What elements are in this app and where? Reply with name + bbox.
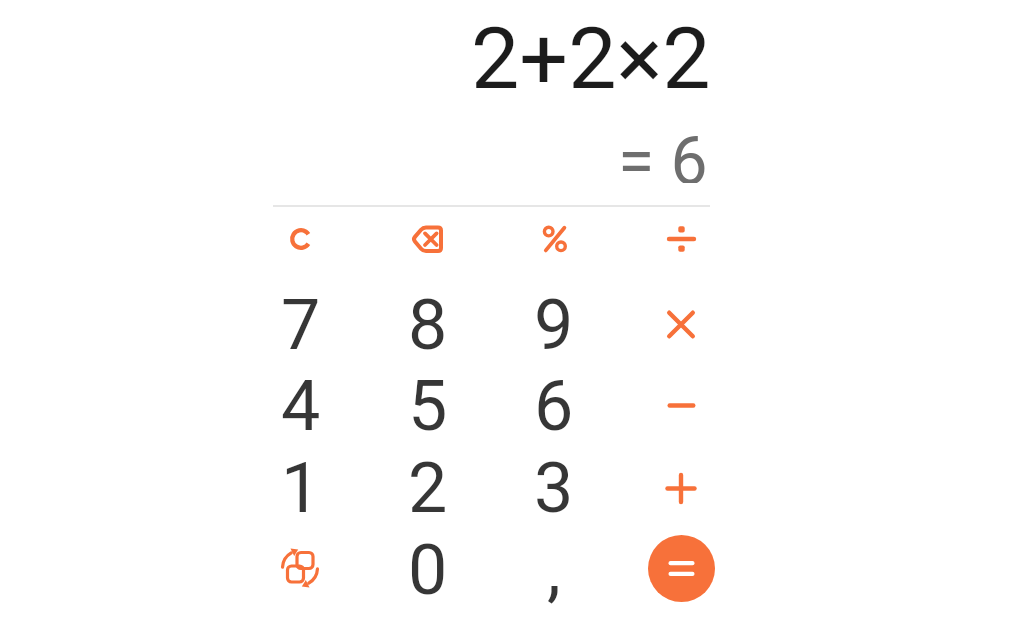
button[interactable]: [366, 198, 490, 280]
staticText: 4: [281, 365, 321, 447]
staticText: 2: [408, 447, 448, 529]
staticText: 3: [534, 447, 574, 529]
button[interactable]: 1: [239, 447, 363, 529]
button[interactable]: 3: [492, 447, 616, 529]
button[interactable]: 6: [492, 365, 616, 447]
button[interactable]: 0: [366, 529, 490, 611]
button[interactable]: 7: [239, 284, 363, 366]
staticText: 9: [534, 284, 574, 366]
button[interactable]: [619, 198, 743, 280]
staticText: ,: [547, 529, 561, 611]
staticText: 1: [281, 447, 321, 529]
staticText: = 6: [618, 123, 708, 183]
button[interactable]: [648, 535, 715, 602]
staticText: 0: [408, 529, 448, 611]
button[interactable]: 5: [366, 365, 490, 447]
button[interactable]: ,: [492, 529, 616, 611]
button[interactable]: 8: [366, 284, 490, 366]
button[interactable]: 4: [239, 365, 363, 447]
button[interactable]: 9: [492, 284, 616, 366]
staticText: 6: [534, 365, 574, 447]
button[interactable]: [492, 198, 616, 280]
button[interactable]: [619, 284, 743, 366]
button[interactable]: [619, 447, 743, 529]
staticText: 7: [281, 284, 321, 366]
button[interactable]: [619, 365, 743, 447]
button[interactable]: 2+2×2: [261, 8, 711, 109]
staticText: 5: [408, 365, 448, 447]
button[interactable]: [239, 198, 363, 280]
button[interactable]: [239, 529, 363, 611]
button[interactable]: 2: [366, 447, 490, 529]
staticText: 8: [408, 284, 448, 366]
staticText: 2+2×2: [471, 8, 711, 109]
